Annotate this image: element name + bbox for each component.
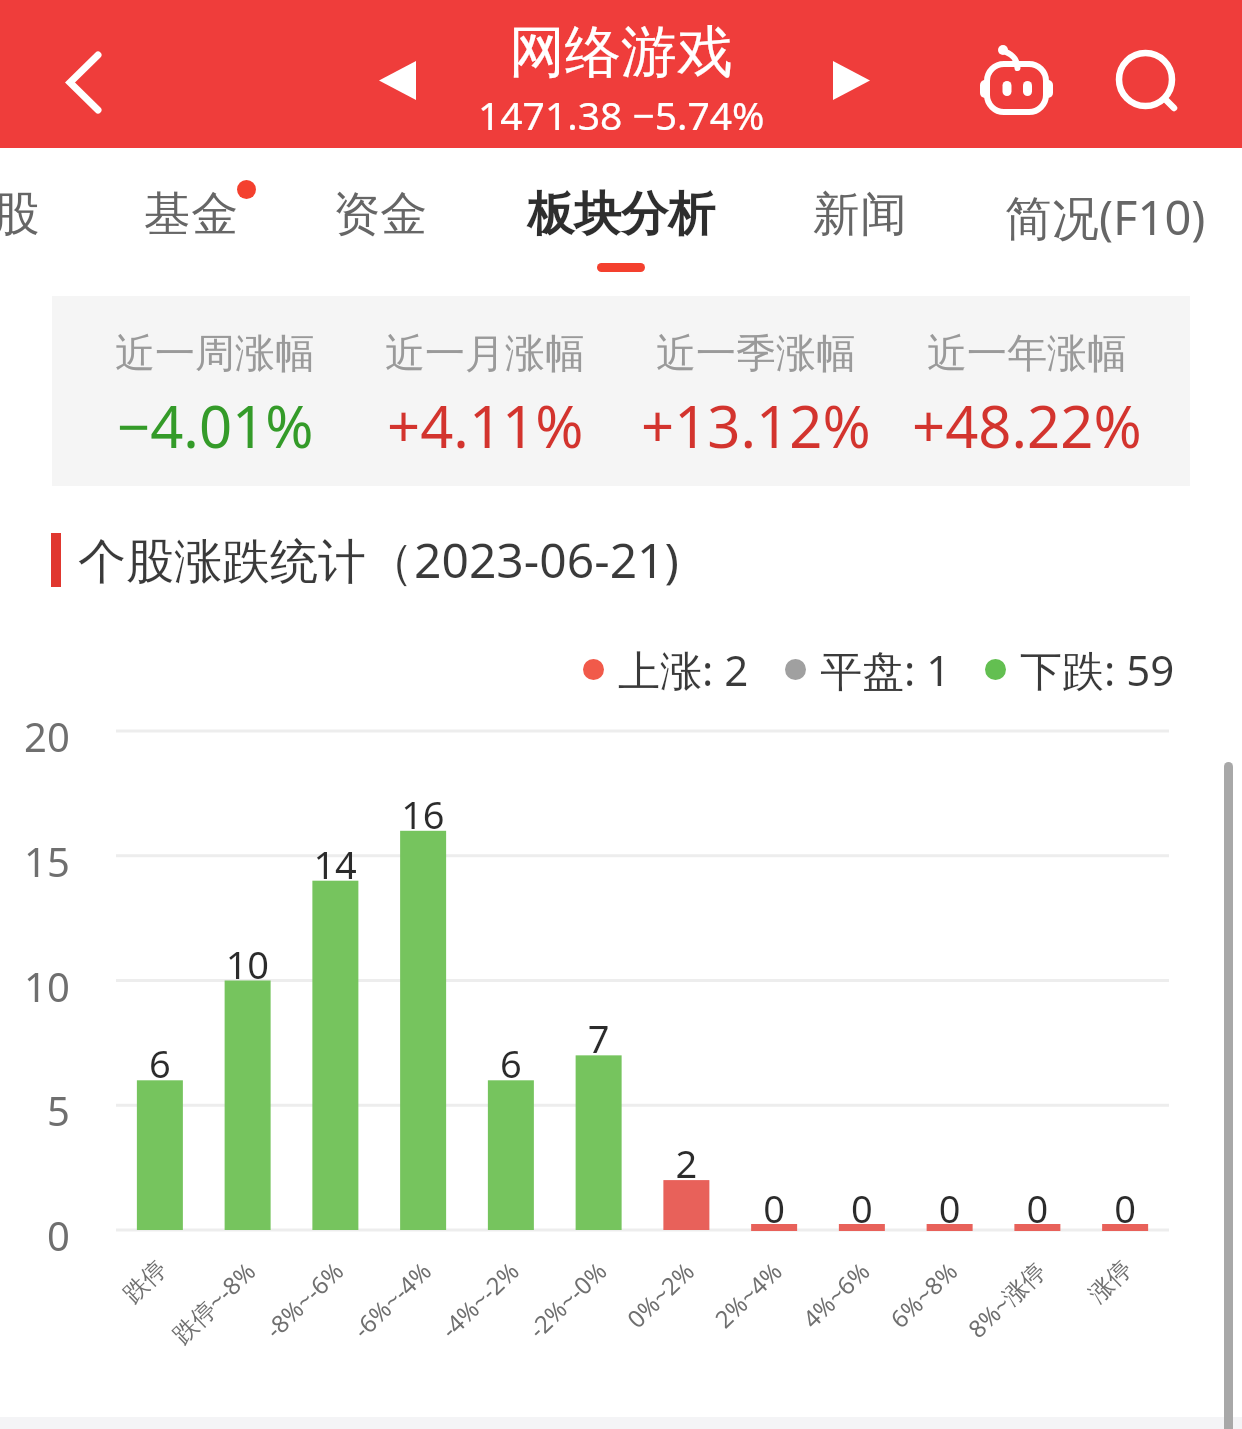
button[interactable]: 涨停: 0 — [1081, 731, 1169, 1230]
button[interactable]: 板块分析 — [527, 148, 715, 272]
button[interactable]: Next sector — [811, 40, 891, 120]
staticText: 下跌: 59 — [1020, 641, 1175, 698]
staticText: 网络游戏 — [509, 17, 733, 88]
button[interactable]: 近一年涨幅 — [891, 328, 1162, 465]
button[interactable]: AI assistant — [962, 28, 1072, 134]
staticText: −4.01% — [117, 386, 314, 465]
button[interactable]: -2%~-0%: 7 — [555, 731, 643, 1230]
button[interactable]: 资金 — [333, 148, 427, 263]
staticText: 上涨: 2 — [618, 641, 749, 698]
staticText: 近一年涨幅 — [927, 328, 1127, 378]
staticText: 近一周涨幅 — [115, 328, 315, 378]
button[interactable]: Search — [1099, 33, 1199, 133]
button[interactable]: 新闻 — [813, 148, 907, 263]
button[interactable]: -4%~-2%: 6 — [467, 731, 555, 1230]
button[interactable]: 8%~涨停: 0 — [994, 731, 1082, 1230]
staticText: 平盘: 1 — [820, 641, 951, 698]
staticText: 资金 — [333, 185, 427, 244]
staticText: 简况(F10) — [1005, 185, 1206, 249]
button[interactable]: 基金 — [144, 148, 238, 263]
button[interactable]: 4%~6%: 0 — [818, 731, 906, 1230]
staticText: +4.11% — [387, 386, 584, 465]
staticText: 新闻 — [813, 185, 907, 244]
button[interactable]: 近一周涨幅 — [80, 328, 350, 465]
button[interactable]: -8%~-6%: 14 — [292, 731, 380, 1230]
staticText: 1471.38 −5.74% — [478, 88, 765, 141]
button[interactable]: 近一月涨幅 — [350, 328, 620, 465]
button[interactable]: 近一季涨幅 — [620, 328, 891, 465]
button[interactable]: Back — [29, 27, 139, 137]
button[interactable]: -6%~-4%: 16 — [379, 731, 467, 1230]
button[interactable]: 2%~4%: 0 — [730, 731, 818, 1230]
button[interactable]: 股 — [0, 148, 40, 263]
button[interactable]: 跌停: 6 — [116, 731, 204, 1230]
staticText: 近一月涨幅 — [385, 328, 585, 378]
button[interactable]: 0%~2%: 2 — [643, 731, 731, 1230]
button[interactable]: 下跌: 59 — [985, 641, 1175, 698]
staticText: +13.12% — [641, 386, 871, 465]
button[interactable]: Previous sector — [357, 40, 437, 120]
staticText: 板块分析 — [527, 185, 715, 244]
staticText: 个股涨跌统计（2023-06-21) — [78, 527, 679, 593]
button[interactable]: 6%~8%: 0 — [906, 731, 994, 1230]
staticText: 基金 — [144, 185, 238, 244]
button[interactable]: 平盘: 1 — [785, 641, 951, 698]
staticText: 近一季涨幅 — [656, 328, 856, 378]
staticText: +48.22% — [912, 386, 1142, 465]
button[interactable]: 简况(F10) — [1005, 148, 1206, 268]
button[interactable]: 跌停~-8%: 10 — [204, 731, 292, 1230]
staticText: 股 — [0, 185, 40, 244]
button[interactable]: 上涨: 2 — [583, 641, 749, 698]
